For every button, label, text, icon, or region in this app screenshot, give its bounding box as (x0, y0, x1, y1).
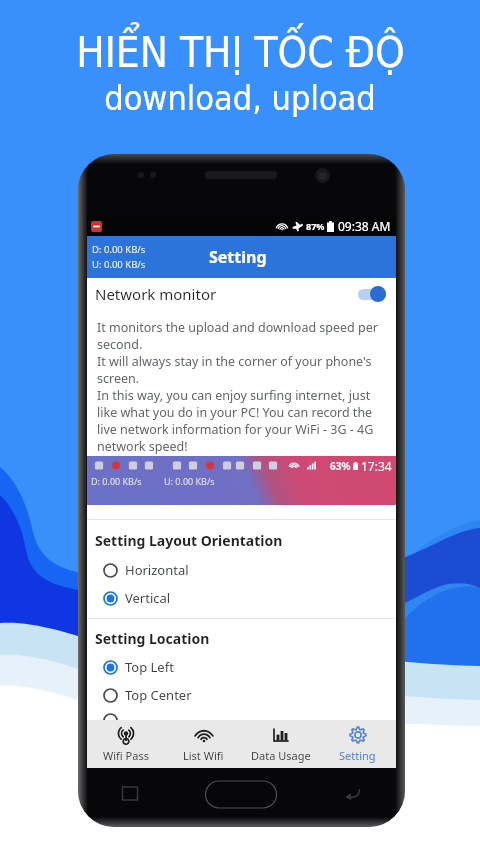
staticText: like what you do in your PC! You can rec… (97, 404, 373, 421)
staticText: second. (97, 336, 143, 353)
staticText: Setting Layout Orientation (95, 531, 283, 550)
staticText: Setting (209, 246, 267, 268)
staticText: It will always stay in the corner of you… (97, 353, 372, 370)
staticText: Data Usage (251, 748, 311, 763)
staticText: It monitors the upload and download spee… (97, 319, 378, 336)
staticText: HIỂN THỊ TỐC ĐỘ (76, 28, 405, 77)
staticText: Setting Location (95, 629, 210, 648)
staticText: Wifi Pass (103, 748, 149, 763)
staticText: Setting (339, 748, 376, 763)
staticText: Horizontal (125, 561, 189, 579)
staticText: 63% (330, 459, 351, 473)
staticText: screen. (97, 370, 140, 387)
staticText: D: 0.00 KB/s (91, 475, 142, 487)
staticText: Top Left (125, 658, 174, 676)
staticText: U: 0.00 KB/s (164, 475, 215, 487)
button[interactable]: Data Usage (242, 720, 319, 768)
staticText: network speed! (97, 438, 188, 455)
staticText: D: 0.00 KB/s (92, 243, 146, 256)
staticText: live network information for your WiFi -… (97, 421, 374, 438)
button[interactable]: Vertical (87, 584, 396, 612)
button[interactable] (87, 709, 396, 731)
staticText: Top Center (125, 686, 192, 704)
button[interactable]: Network monitor (87, 278, 396, 310)
button[interactable]: Wifi Pass (87, 720, 165, 768)
staticText: List Wifi (183, 748, 224, 763)
staticText: 17:34 (361, 458, 392, 474)
button[interactable]: Top Left (87, 653, 396, 681)
button[interactable]: List Wifi (165, 720, 242, 768)
button[interactable]: Horizontal (87, 556, 396, 584)
button[interactable]: Setting (319, 720, 396, 768)
button[interactable]: Top Center (87, 681, 396, 709)
staticText: 87% (306, 220, 325, 232)
staticText: In this way, you can enjoy surfing inter… (97, 387, 371, 404)
staticText: U: 0.00 KB/s (92, 258, 146, 271)
staticText: download, upload (104, 78, 376, 118)
staticText: 09:38 AM (338, 218, 391, 234)
staticText: Vertical (125, 589, 171, 607)
staticText: Network monitor (95, 284, 217, 304)
